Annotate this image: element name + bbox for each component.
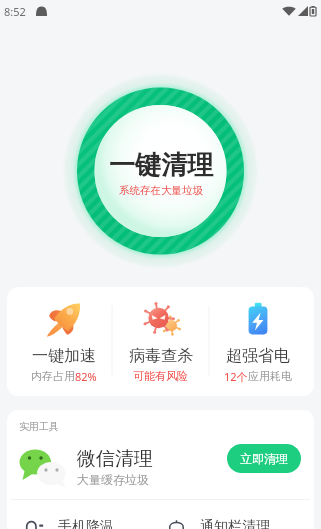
staticText: 超强省电 bbox=[226, 346, 290, 366]
button[interactable]: 病毒查杀 bbox=[112, 287, 209, 396]
staticText: 一键清理 bbox=[109, 149, 213, 182]
button[interactable]: 立即清理 bbox=[227, 444, 301, 473]
staticText: 实用工具 bbox=[19, 420, 59, 433]
staticText: 一键加速 bbox=[32, 346, 96, 366]
staticText: 立即清理 bbox=[240, 451, 288, 466]
staticText: 病毒查杀 bbox=[129, 346, 193, 366]
staticText: 通知栏清理 bbox=[200, 518, 270, 529]
staticText: 手机降温 bbox=[58, 518, 114, 529]
staticText: 82% bbox=[75, 369, 97, 384]
button[interactable]: 一键加速 bbox=[15, 287, 112, 396]
button[interactable]: 通知栏清理 bbox=[160, 500, 314, 529]
button[interactable]: 手机降温 bbox=[7, 500, 160, 529]
staticText: 12个 bbox=[224, 369, 248, 384]
button[interactable]: 一键清理 bbox=[0, 149, 321, 197]
staticText: 大量缓存垃圾 bbox=[77, 472, 149, 487]
button[interactable]: 微信清理 bbox=[7, 443, 314, 491]
staticText: 可能有风险 bbox=[133, 369, 188, 383]
staticText: 8:52 bbox=[4, 4, 26, 19]
button[interactable]: 超强省电 bbox=[209, 287, 306, 396]
staticText: 应用耗电 bbox=[248, 369, 292, 383]
staticText: 内存占用 bbox=[31, 369, 75, 383]
staticText: 微信清理 bbox=[77, 447, 153, 471]
staticText: 系统存在大量垃圾 bbox=[119, 184, 203, 197]
